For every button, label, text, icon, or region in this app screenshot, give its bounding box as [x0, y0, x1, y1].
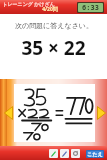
button[interactable]: こたえ	[87, 151, 103, 157]
button[interactable]: Pen	[61, 150, 68, 157]
staticText: トレーニング かけざん	[2, 1, 55, 8]
button[interactable]: Next	[97, 106, 106, 120]
button[interactable]: Pencil	[50, 150, 57, 157]
button[interactable]: Erase	[72, 150, 79, 157]
staticText: 6:33	[82, 3, 99, 12]
staticText: 4/20問	[42, 6, 58, 13]
button[interactable]	[14, 84, 95, 142]
staticText: こたえ	[87, 151, 103, 157]
staticText: 次の問題に答えなさい。	[15, 21, 93, 30]
staticText: 35 × 22	[21, 35, 86, 61]
button[interactable]: Previous	[4, 106, 13, 120]
